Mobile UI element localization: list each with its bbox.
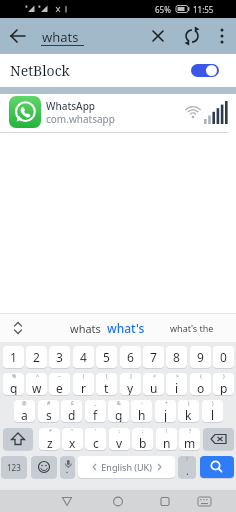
button[interactable]: 3: [49, 346, 70, 368]
button[interactable]: 4: [73, 346, 94, 368]
button[interactable]: ]: [120, 373, 141, 395]
button[interactable]: 2: [26, 346, 47, 368]
button[interactable]: [153, 490, 177, 512]
button[interactable]: 6: [120, 346, 141, 368]
button[interactable]: £: [61, 400, 82, 422]
staticText: h: [138, 407, 146, 422]
button[interactable]: [212, 24, 232, 48]
button[interactable]: 7: [143, 346, 164, 368]
button[interactable]: 0: [213, 346, 234, 368]
button[interactable]: ?: [179, 428, 200, 450]
staticText: 11:55: [193, 4, 214, 15]
staticText: WhatsApp: [46, 99, 96, 113]
button[interactable]: |: [73, 373, 94, 395]
button[interactable]: ;: [132, 428, 153, 450]
button[interactable]: 123: [1, 456, 27, 478]
staticText: u: [150, 380, 158, 395]
staticText: 5: [103, 349, 110, 365]
staticText: ?: [186, 456, 189, 463]
button[interactable]: ': [85, 428, 106, 450]
button[interactable]: [180, 24, 204, 48]
staticText: f: [93, 407, 98, 422]
button[interactable]: what's: [98, 316, 154, 340]
staticText: i: [175, 380, 179, 395]
staticText: 6: [127, 349, 134, 365]
button[interactable]: ~: [49, 373, 70, 395]
staticText: p: [220, 380, 228, 395]
button[interactable]: #: [38, 400, 59, 422]
button[interactable]: [191, 490, 217, 512]
button[interactable]: [0, 94, 236, 132]
staticText: NetBlock: [10, 61, 70, 80]
button[interactable]: _: [85, 400, 106, 422]
staticText: ]: [130, 373, 132, 380]
button[interactable]: <: [143, 373, 164, 395]
button[interactable]: [8, 318, 28, 338]
button[interactable]: }: [213, 373, 234, 395]
button[interactable]: 9: [190, 346, 211, 368]
button[interactable]: :: [109, 428, 130, 450]
staticText: o: [197, 380, 205, 395]
button[interactable]: !: [156, 428, 177, 450]
button[interactable]: 8: [166, 346, 187, 368]
staticText: <: [153, 373, 156, 380]
staticText: ?: [189, 428, 192, 435]
staticText: *: [49, 428, 52, 435]
staticText: e: [56, 380, 63, 395]
button[interactable]: [3, 428, 33, 450]
staticText: ^: [36, 373, 39, 380]
staticText: a: [21, 407, 28, 422]
button[interactable]: @: [14, 400, 35, 422]
button[interactable]: [191, 64, 219, 77]
staticText: !: [166, 428, 168, 435]
staticText: k: [185, 407, 192, 422]
staticText: ): [212, 400, 214, 407]
staticText: j: [164, 407, 168, 422]
button[interactable]: +: [155, 400, 176, 422]
button[interactable]: what's the: [162, 316, 222, 340]
staticText: what's: [107, 320, 145, 336]
staticText: c: [93, 435, 99, 450]
button[interactable]: (: [178, 400, 199, 422]
button[interactable]: %: [3, 373, 24, 395]
button[interactable]: [146, 24, 170, 48]
button[interactable]: whats: [55, 316, 115, 340]
button[interactable]: [106, 490, 130, 512]
button[interactable]: ^: [26, 373, 47, 395]
button[interactable]: -: [131, 400, 152, 422]
button[interactable]: *: [39, 428, 60, 450]
button[interactable]: 1: [3, 346, 24, 368]
button[interactable]: [: [96, 373, 117, 395]
button[interactable]: [55, 490, 79, 512]
button[interactable]: {: [190, 373, 211, 395]
staticText: 65%: [155, 4, 171, 15]
button[interactable]: [200, 456, 234, 478]
staticText: whats: [70, 321, 101, 336]
staticText: l: [211, 407, 215, 422]
staticText: r: [81, 380, 86, 395]
button[interactable]: [60, 456, 75, 478]
button[interactable]: English (UK): [78, 456, 175, 478]
button[interactable]: &: [108, 400, 129, 422]
button[interactable]: >: [166, 373, 187, 395]
button[interactable]: [31, 456, 57, 478]
button[interactable]: [0, 54, 236, 87]
staticText: g: [115, 407, 123, 422]
staticText: q: [10, 380, 18, 395]
staticText: z: [47, 435, 53, 450]
staticText: b: [139, 435, 147, 450]
button[interactable]: ?: [178, 456, 196, 478]
staticText: ": [71, 428, 74, 435]
button[interactable]: 5: [96, 346, 117, 368]
button[interactable]: [6, 24, 30, 48]
staticText: com.whatsapp: [46, 112, 115, 126]
staticText: #: [47, 400, 51, 407]
staticText: {: [200, 373, 202, 380]
button[interactable]: ): [202, 400, 223, 422]
staticText: &: [117, 400, 121, 407]
button[interactable]: [203, 428, 234, 450]
staticText: 1: [10, 349, 17, 365]
button[interactable]: ": [62, 428, 83, 450]
staticText: v: [116, 435, 123, 450]
staticText: }: [223, 373, 225, 380]
